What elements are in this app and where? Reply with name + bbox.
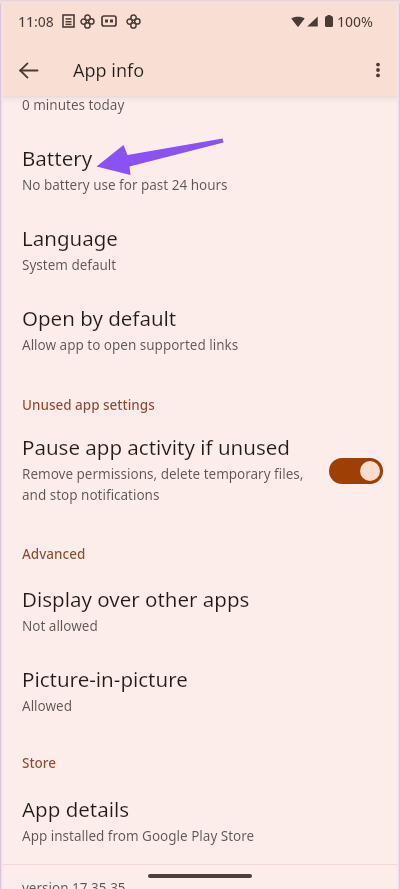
- staticText: Not allowed: [22, 617, 98, 635]
- button[interactable]: Open by default: [0, 288, 400, 368]
- staticText: 11:08: [18, 12, 54, 31]
- staticText: Unused app settings: [22, 396, 155, 414]
- button[interactable]: More options: [358, 50, 398, 90]
- staticText: 100%: [337, 12, 373, 31]
- staticText: Allowed: [22, 697, 73, 715]
- button[interactable]: App details: [0, 772, 400, 859]
- staticText: Battery: [22, 144, 93, 172]
- staticText: 0 minutes today: [22, 96, 125, 114]
- staticText: App installed from Google Play Store: [22, 827, 255, 845]
- staticText: Language: [22, 224, 118, 252]
- staticText: App details: [22, 795, 130, 823]
- button[interactable]: Display over other apps: [0, 563, 400, 649]
- staticText: Allow app to open supported links: [22, 336, 239, 354]
- staticText: Display over other apps: [22, 585, 250, 613]
- button[interactable]: Pause app activity if unused toggle: [329, 458, 383, 484]
- staticText: System default: [22, 256, 117, 274]
- button[interactable]: Pause app activity if unused: [0, 414, 400, 520]
- button[interactable]: Battery: [0, 128, 400, 208]
- staticText: Pause app activity if unused: [22, 433, 290, 461]
- button[interactable]: Language: [0, 208, 400, 288]
- staticText: Open by default: [22, 304, 177, 332]
- staticText: Advanced: [22, 545, 86, 563]
- staticText: No battery use for past 24 hours: [22, 176, 228, 194]
- staticText: Picture-in-picture: [22, 665, 188, 693]
- staticText: version 17.35.35: [22, 879, 126, 889]
- staticText: App info: [73, 58, 145, 83]
- button[interactable]: Picture-in-picture: [0, 649, 400, 729]
- button[interactable]: Back: [8, 50, 48, 90]
- staticText: Remove permissions, delete temporary fil…: [22, 465, 304, 504]
- staticText: Store: [22, 754, 57, 772]
